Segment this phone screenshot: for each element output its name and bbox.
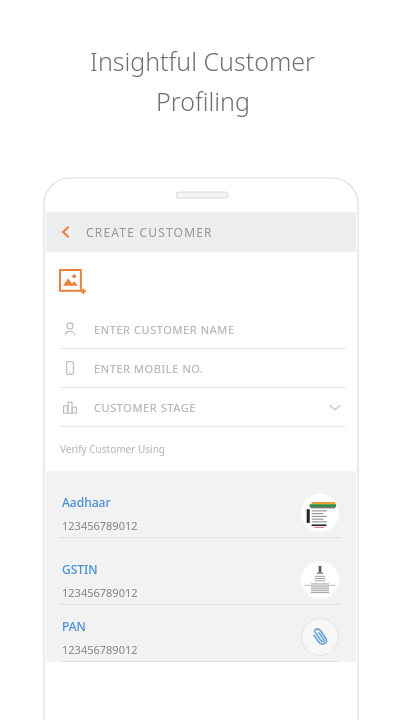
staticText: CUSTOMER STAGE: [94, 400, 197, 415]
button[interactable]: CUSTOMER STAGE: [46, 388, 356, 427]
button[interactable]: GSTIN: [46, 538, 356, 605]
staticText: PAN: [62, 618, 86, 634]
button[interactable]: PAN: [46, 605, 356, 662]
button[interactable]: Aadhaar: [46, 471, 356, 538]
button[interactable]: ENTER CUSTOMER NAME: [46, 310, 356, 349]
button[interactable]: Back: [46, 212, 86, 252]
staticText: ENTER MOBILE NO.: [94, 361, 204, 376]
button[interactable]: Add photo: [60, 270, 86, 296]
staticText: ENTER CUSTOMER NAME: [94, 322, 235, 337]
staticText: 123456789012: [62, 642, 138, 657]
staticText: CREATE CUSTOMER: [86, 224, 213, 240]
staticText: Profiling: [156, 84, 250, 118]
staticText: Verify Customer Using: [60, 442, 165, 456]
button[interactable]: ENTER MOBILE NO.: [46, 349, 356, 388]
staticText: Insightful Customer: [90, 44, 315, 78]
staticText: GSTIN: [62, 561, 98, 577]
staticText: 123456789012: [62, 518, 138, 533]
staticText: 123456789012: [62, 585, 138, 600]
staticText: Aadhaar: [62, 494, 111, 510]
